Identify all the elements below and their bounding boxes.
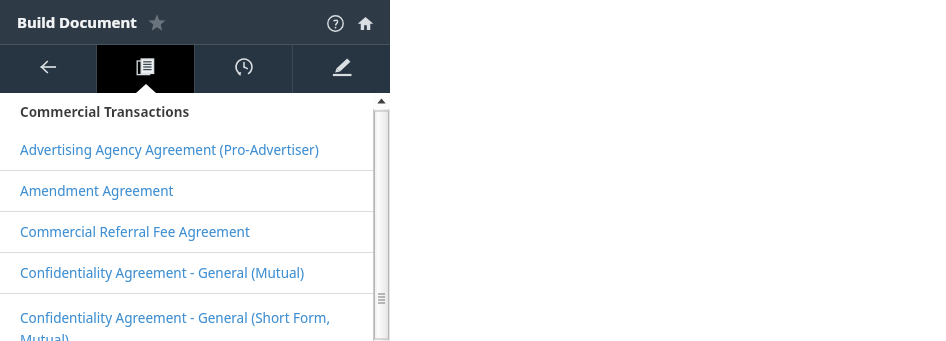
staticText: Advertising Agency Agreement (Pro-Advert…	[20, 141, 319, 159]
staticText: Build Document	[17, 12, 137, 32]
button[interactable]: History	[195, 45, 292, 93]
staticText: Confidentiality Agreement - General (Mut…	[20, 264, 305, 282]
button[interactable]: Commercial Referral Fee Agreement	[0, 212, 390, 253]
button[interactable]: Home	[352, 10, 378, 36]
staticText: Commercial Transactions	[20, 103, 190, 121]
staticText: Commercial Referral Fee Agreement	[20, 223, 250, 241]
staticText: Amendment Agreement	[20, 182, 174, 200]
button[interactable]: Advertising Agency Agreement (Pro-Advert…	[0, 130, 390, 171]
button[interactable]: Help	[322, 10, 348, 36]
button[interactable]: Favorite	[146, 12, 168, 34]
button[interactable]: Edit	[293, 45, 390, 93]
staticText: Confidentiality Agreement - General (Sho…	[20, 309, 331, 327]
button[interactable]: Back	[0, 45, 96, 93]
button[interactable]: Amendment Agreement	[0, 171, 390, 212]
staticText: Mutual)	[20, 331, 69, 341]
button[interactable]: Confidentiality Agreement - General (Sho…	[0, 294, 390, 341]
button[interactable]: Document	[97, 45, 194, 93]
button[interactable]: Confidentiality Agreement - General (Mut…	[0, 253, 390, 294]
